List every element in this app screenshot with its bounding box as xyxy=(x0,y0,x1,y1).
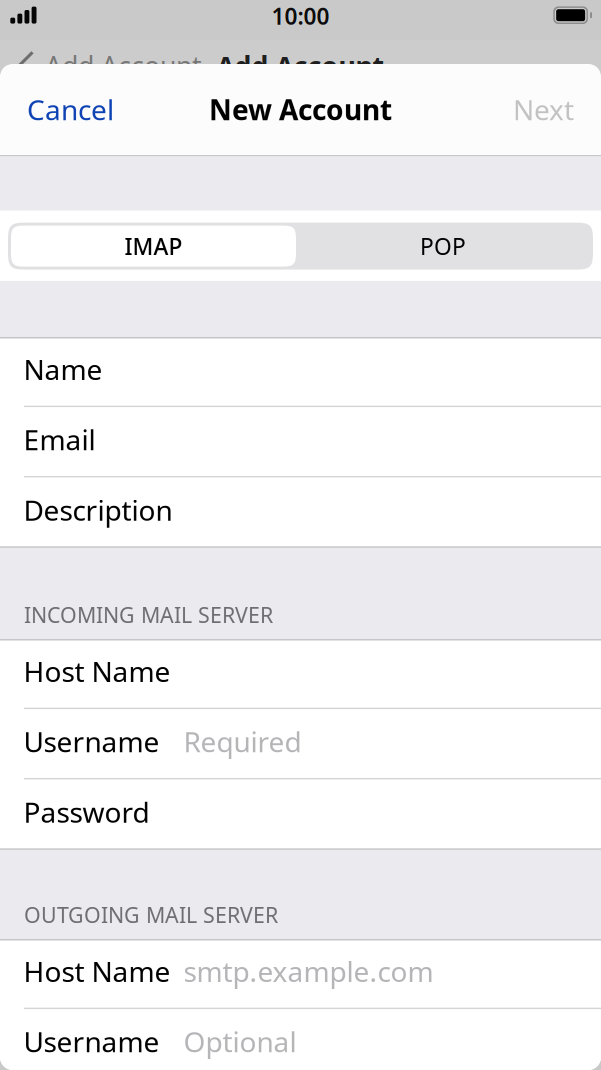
staticText: INCOMING MAIL SERVER xyxy=(24,601,273,629)
staticText: OUTGOING MAIL SERVER xyxy=(24,901,278,929)
staticText: Host Name xyxy=(23,952,170,990)
button[interactable]: Username xyxy=(0,709,601,780)
staticText: POP xyxy=(420,231,466,261)
staticText: New Account xyxy=(209,91,392,128)
button[interactable]: Username xyxy=(0,1009,601,1070)
staticText: Name xyxy=(23,350,102,388)
button[interactable]: Email xyxy=(0,407,601,478)
staticText: Optional xyxy=(183,1023,296,1060)
staticText: Add Account xyxy=(45,48,202,83)
staticText: Host Name xyxy=(23,652,170,690)
staticText: Add Account xyxy=(216,48,384,83)
staticText: Next xyxy=(513,91,574,128)
staticText: Username xyxy=(23,1023,159,1060)
staticText: Required xyxy=(183,723,301,760)
button[interactable]: POP xyxy=(296,226,590,267)
button[interactable]: IMAP xyxy=(11,226,296,267)
button[interactable]: Host Name xyxy=(0,639,601,709)
button[interactable]: Cancel xyxy=(0,76,130,142)
staticText: IMAP xyxy=(124,231,182,261)
button[interactable]: Name xyxy=(0,337,601,407)
button[interactable]: Next xyxy=(497,76,601,142)
staticText: 10:00 xyxy=(271,1,329,31)
staticText: Email xyxy=(23,421,95,458)
staticText: Username xyxy=(23,723,159,760)
button[interactable]: Password xyxy=(0,780,601,850)
button[interactable]: Host Name xyxy=(0,939,601,1009)
staticText: Description xyxy=(23,491,172,528)
staticText: Password xyxy=(23,793,149,830)
staticText: Cancel xyxy=(27,91,114,128)
button[interactable]: Description xyxy=(0,478,601,548)
staticText: smtp.example.com xyxy=(183,952,433,990)
